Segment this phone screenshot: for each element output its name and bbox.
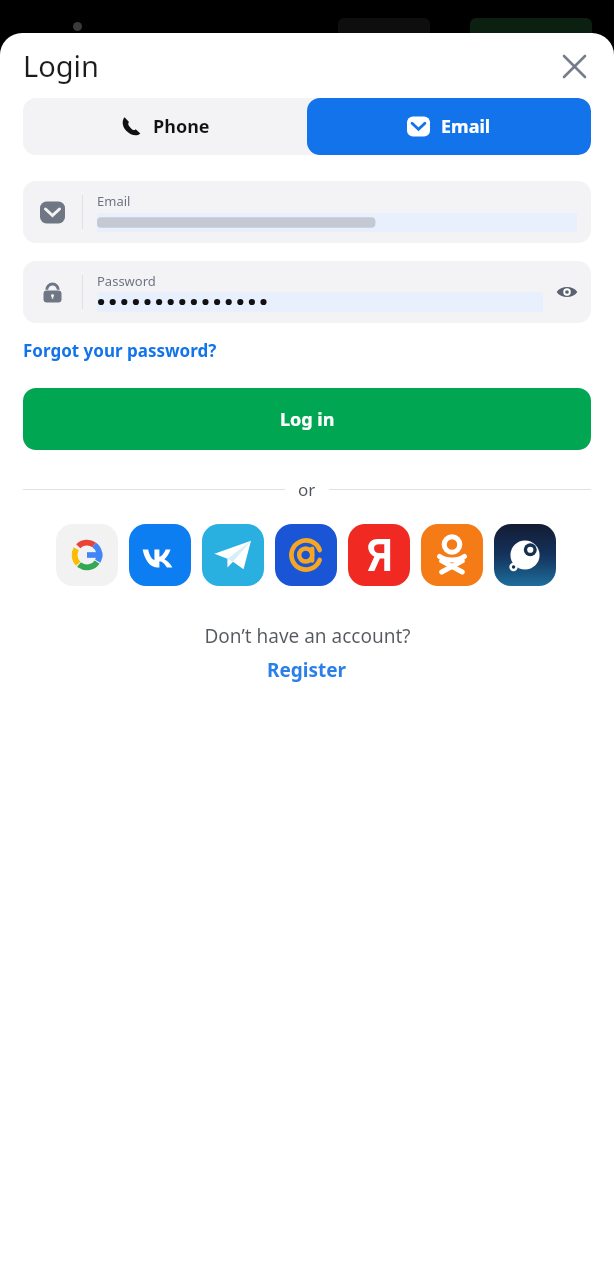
staticText: Forgot your password? — [23, 339, 217, 362]
button[interactable]: Close — [552, 44, 596, 88]
staticText: Don’t have an account? — [204, 623, 411, 649]
button[interactable]: Sign in with VK — [129, 524, 191, 586]
staticText: or — [298, 478, 316, 501]
button[interactable]: Sign in with Mail.ru — [275, 524, 337, 586]
staticText: Email — [97, 192, 131, 210]
staticText: Log in — [280, 407, 335, 432]
button[interactable]: Show password — [543, 268, 591, 316]
button[interactable]: Log in — [23, 388, 591, 450]
button[interactable]: Password — [23, 261, 591, 323]
staticText: Email — [441, 114, 491, 139]
button[interactable]: Sign in with Google — [56, 524, 118, 586]
button[interactable]: Sign in with Telegram — [202, 524, 264, 586]
button[interactable]: Forgot your password? — [23, 339, 217, 362]
button[interactable]: Email — [23, 181, 591, 243]
button[interactable]: Sign in with Odnoklassniki — [421, 524, 483, 586]
staticText: Login — [23, 46, 99, 85]
staticText: Register — [267, 657, 347, 683]
button[interactable]: Sign in with Yandex — [348, 524, 410, 586]
button[interactable]: Phone — [23, 98, 307, 155]
button[interactable]: Sign in with Steam — [494, 524, 556, 586]
button[interactable]: Register — [267, 657, 347, 683]
staticText: Password — [97, 272, 156, 290]
staticText: Phone — [153, 114, 210, 139]
button[interactable]: Email — [307, 98, 591, 155]
